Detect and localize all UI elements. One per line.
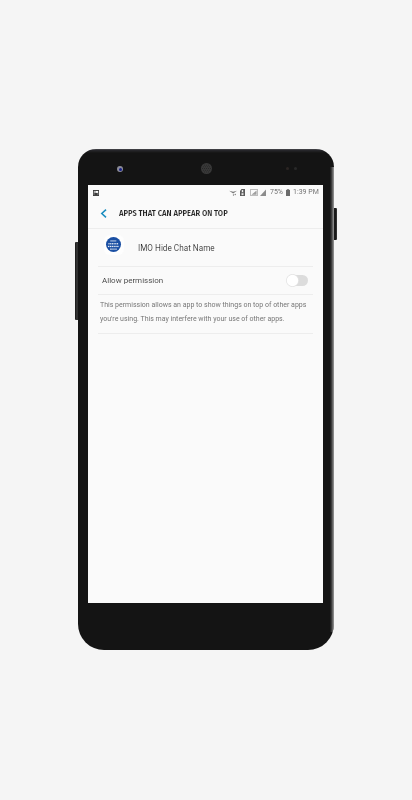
staticText: 75% [270,188,283,196]
staticText: APPS THAT CAN APPEAR ON TOP [119,208,228,218]
button[interactable]: IMO Hide Chat Name [88,229,323,266]
staticText: Allow permission [102,276,164,285]
staticText: This permission allows an app to show th… [100,301,312,322]
staticText: 1:39 PM [293,188,319,196]
staticText: IMO Hide Chat Name [138,243,215,253]
button[interactable]: Back [88,199,119,228]
button[interactable]: Allow permission [88,267,323,294]
